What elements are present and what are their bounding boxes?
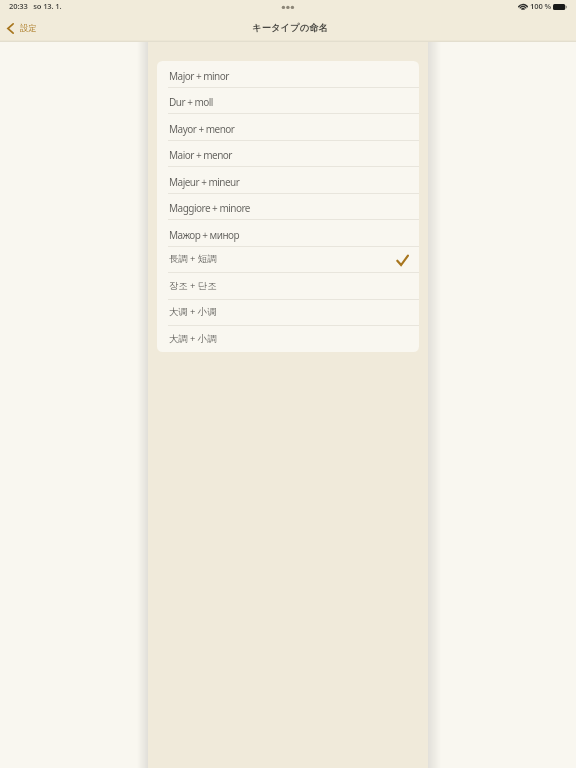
button[interactable]: 大調 + 小調 xyxy=(157,326,419,352)
button[interactable]: Maggiore + minore xyxy=(157,193,419,219)
button[interactable]: Back to Settings xyxy=(3,20,39,37)
button[interactable]: 長調 + 短調 xyxy=(157,246,419,272)
staticText: 100 % xyxy=(530,1,551,11)
staticText: Maggiore + minore xyxy=(169,201,250,215)
staticText: 20:33 so 13. 1. xyxy=(9,1,62,11)
staticText: キータイプの命名 xyxy=(2,22,576,34)
staticText: Mayor + menor xyxy=(169,122,235,136)
staticText: Majeur + mineur xyxy=(169,175,240,189)
staticText: Maior + menor xyxy=(169,148,232,162)
button[interactable]: Mayor + menor xyxy=(157,114,419,140)
button[interactable]: Мажор + минор xyxy=(157,220,419,246)
button[interactable]: Maior + menor xyxy=(157,140,419,166)
staticText: 設定 xyxy=(20,23,37,34)
button[interactable]: 大调 + 小调 xyxy=(157,299,419,325)
button[interactable]: Major + minor xyxy=(157,61,419,87)
button[interactable]: 장조 + 단조 xyxy=(157,273,419,299)
button[interactable]: Majeur + mineur xyxy=(157,167,419,193)
staticText: Dur + moll xyxy=(169,95,213,109)
staticText: 大調 + 小調 xyxy=(169,332,217,345)
staticText: 長調 + 短調 xyxy=(169,252,217,265)
staticText: 大调 + 小调 xyxy=(169,305,217,318)
button[interactable]: Dur + moll xyxy=(157,87,419,113)
staticText: Мажор + минор xyxy=(169,228,240,242)
staticText: 장조 + 단조 xyxy=(169,279,217,292)
staticText: Major + minor xyxy=(169,69,229,83)
